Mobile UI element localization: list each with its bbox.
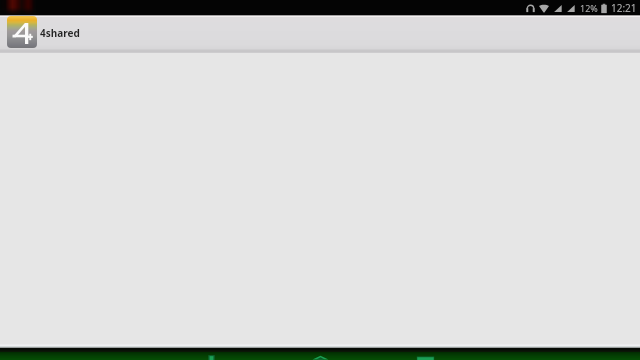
button[interactable]: My files <box>202 352 221 360</box>
staticText: 12:21 <box>611 1 637 15</box>
button[interactable]: Account <box>416 352 435 360</box>
staticText: 4shared <box>40 26 80 40</box>
button[interactable]: Home <box>311 352 330 360</box>
staticText: 12% <box>580 2 598 14</box>
